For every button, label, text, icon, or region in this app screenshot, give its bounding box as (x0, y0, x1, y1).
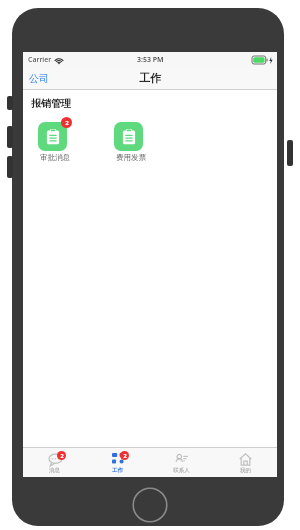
button[interactable]: 我的 (213, 448, 277, 477)
staticText: 报销管理 (31, 97, 71, 110)
staticText: Carrier (28, 55, 52, 65)
staticText: 审批消息 (40, 153, 70, 162)
staticText: 联系人 (173, 467, 190, 474)
staticText: 公司 (29, 72, 49, 85)
button[interactable]: 2 (31, 117, 79, 162)
button[interactable]: 公司 (23, 69, 55, 88)
button[interactable]: 2 (86, 448, 149, 477)
button[interactable]: 费用发票 (107, 117, 155, 162)
staticText: 消息 (49, 467, 60, 474)
staticText: 2 (60, 452, 64, 459)
button[interactable]: 联系人 (149, 448, 213, 477)
staticText: 费用发票 (116, 153, 146, 162)
staticText: 工作 (112, 467, 123, 474)
button[interactable]: Home button (132, 487, 168, 523)
button[interactable]: 2 (23, 448, 86, 477)
staticText: 2 (65, 119, 69, 127)
staticText: 工作 (139, 71, 161, 85)
staticText: 2 (123, 452, 127, 459)
staticText: 3:53 PM (137, 55, 164, 65)
staticText: 我的 (240, 467, 251, 474)
